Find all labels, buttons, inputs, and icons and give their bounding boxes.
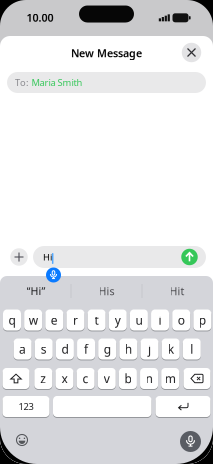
- button[interactable]: x: [55, 368, 73, 389]
- button[interactable]: m: [161, 368, 179, 389]
- staticText: b: [124, 370, 131, 386]
- button[interactable]: Dictation: [46, 267, 61, 282]
- staticText: 123: [18, 400, 33, 413]
- staticText: r: [73, 312, 78, 328]
- staticText: Hit: [169, 284, 184, 298]
- button[interactable]: n: [140, 368, 158, 389]
- staticText: His: [98, 284, 114, 298]
- button[interactable]: f: [77, 338, 95, 359]
- button[interactable]: d: [56, 338, 74, 359]
- staticText: u: [135, 312, 142, 328]
- staticText: s: [41, 341, 47, 357]
- staticText: g: [104, 341, 111, 357]
- staticText: Maria Smith: [31, 76, 82, 89]
- button[interactable]: Send: [181, 249, 198, 265]
- button[interactable]: c: [77, 368, 95, 389]
- button[interactable]: To:: [7, 72, 206, 93]
- button[interactable]: b: [119, 368, 137, 389]
- staticText: w: [29, 312, 38, 328]
- button[interactable]: Delete: [183, 368, 210, 389]
- button[interactable]: w: [24, 309, 42, 330]
- staticText: i: [158, 312, 161, 328]
- button[interactable]: q: [3, 309, 21, 330]
- button[interactable]: v: [98, 368, 116, 389]
- button[interactable]: k: [162, 338, 180, 359]
- staticText: “Hi”: [26, 284, 45, 298]
- button[interactable]: e: [45, 309, 63, 330]
- staticText: New Message: [71, 46, 142, 60]
- button[interactable]: His: [72, 281, 141, 301]
- staticText: 10.00: [26, 10, 53, 25]
- button[interactable]: Add attachment: [10, 248, 28, 266]
- button[interactable]: Emoji: [16, 434, 27, 445]
- button[interactable]: Space: [53, 396, 151, 417]
- button[interactable]: j: [140, 338, 158, 359]
- staticText: v: [104, 370, 110, 386]
- staticText: n: [146, 370, 153, 386]
- staticText: x: [61, 370, 67, 386]
- button[interactable]: Hit: [142, 281, 211, 301]
- button[interactable]: Dictate: [180, 431, 201, 452]
- button[interactable]: t: [88, 309, 106, 330]
- staticText: y: [115, 312, 121, 328]
- staticText: l: [190, 341, 193, 357]
- staticText: d: [61, 341, 68, 357]
- staticText: h: [125, 341, 132, 357]
- staticText: q: [8, 312, 15, 328]
- button[interactable]: “Hi”: [1, 281, 70, 301]
- button[interactable]: z: [34, 368, 52, 389]
- staticText: j: [148, 341, 151, 357]
- staticText: c: [83, 370, 89, 386]
- button[interactable]: g: [98, 338, 116, 359]
- button[interactable]: h: [119, 338, 137, 359]
- button[interactable]: Close: [182, 43, 201, 62]
- staticText: o: [178, 312, 185, 328]
- button[interactable]: a: [14, 338, 32, 359]
- button[interactable]: s: [35, 338, 53, 359]
- button[interactable]: l: [183, 338, 201, 359]
- staticText: p: [199, 312, 206, 328]
- button[interactable]: p: [193, 309, 211, 330]
- button[interactable]: r: [66, 309, 84, 330]
- button[interactable]: y: [109, 309, 127, 330]
- button[interactable]: Hi: [33, 246, 206, 268]
- staticText: t: [95, 312, 99, 328]
- staticText: z: [40, 370, 46, 386]
- staticText: f: [84, 341, 88, 357]
- button[interactable]: i: [151, 309, 169, 330]
- staticText: a: [19, 341, 26, 357]
- staticText: e: [51, 312, 58, 328]
- button[interactable]: o: [172, 309, 190, 330]
- button[interactable]: Return: [155, 396, 210, 417]
- button[interactable]: u: [130, 309, 148, 330]
- button[interactable]: Shift: [2, 368, 29, 389]
- staticText: To:: [15, 76, 29, 89]
- button[interactable]: 123: [2, 396, 49, 417]
- staticText: k: [168, 341, 174, 357]
- staticText: m: [165, 370, 176, 386]
- staticText: Hi: [43, 251, 52, 263]
